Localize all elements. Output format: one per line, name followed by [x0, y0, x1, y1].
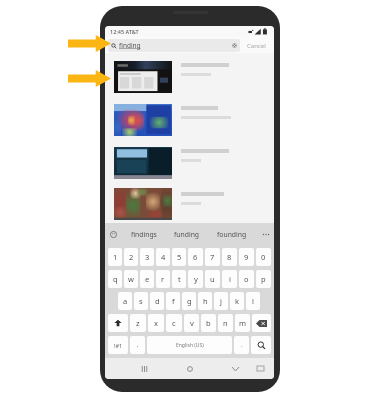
staticText: t — [178, 274, 181, 284]
button[interactable]: 9 — [239, 248, 254, 266]
button[interactable] — [105, 55, 274, 98]
other: Clear text — [232, 43, 237, 48]
staticText: Cancel — [247, 42, 266, 50]
staticText: funding — [174, 230, 200, 239]
button[interactable]: 0 — [256, 248, 271, 266]
other: Shift — [114, 319, 122, 327]
button[interactable]: Emoji — [109, 230, 118, 239]
button[interactable]: Backspace — [252, 314, 271, 332]
staticText: s — [139, 296, 143, 306]
button[interactable]: More — [261, 230, 270, 239]
button[interactable]: e — [140, 270, 154, 288]
staticText: founding — [217, 230, 247, 239]
staticText: e — [145, 274, 150, 284]
button[interactable]: Cancel — [240, 39, 273, 52]
button[interactable]: b — [201, 314, 216, 332]
button[interactable]: i — [222, 270, 237, 288]
staticText: !#1 — [114, 342, 123, 349]
staticText: a — [123, 296, 128, 306]
staticText: 9 — [244, 252, 249, 262]
button[interactable]: founding — [217, 230, 247, 239]
staticText: 5 — [177, 252, 182, 262]
button[interactable]: z — [130, 314, 146, 332]
button[interactable]: j — [214, 292, 228, 310]
button[interactable] — [105, 98, 274, 141]
staticText: w — [128, 274, 134, 284]
button[interactable]: 5 — [172, 248, 186, 266]
button[interactable]: x — [148, 314, 164, 332]
staticText: English (US) — [176, 342, 204, 349]
staticText: findings — [131, 230, 157, 239]
button[interactable]: q — [108, 270, 122, 288]
button[interactable]: p — [256, 270, 271, 288]
button[interactable]: 1 — [108, 248, 122, 266]
staticText: j — [220, 296, 222, 306]
button[interactable]: d — [150, 292, 164, 310]
staticText: f — [172, 296, 175, 306]
staticText: 1 — [113, 252, 118, 262]
staticText: b — [206, 318, 211, 328]
button[interactable]: h — [198, 292, 212, 310]
staticText: 8 — [227, 252, 232, 262]
button[interactable]: Recents — [135, 362, 153, 375]
button[interactable]: . — [234, 336, 249, 354]
button[interactable]: 6 — [188, 248, 203, 266]
button[interactable]: Search — [251, 336, 271, 354]
button[interactable]: finding — [108, 39, 240, 52]
button[interactable]: c — [166, 314, 182, 332]
button[interactable] — [105, 184, 274, 223]
button[interactable]: 4 — [156, 248, 170, 266]
staticText: l — [252, 296, 254, 306]
button[interactable]: v — [184, 314, 199, 332]
button[interactable]: a — [118, 292, 132, 310]
staticText: finding — [119, 41, 141, 50]
button[interactable]: Back — [226, 362, 244, 375]
button[interactable]: funding — [174, 230, 200, 239]
button[interactable]: 3 — [140, 248, 154, 266]
staticText: u — [210, 274, 215, 284]
staticText: p — [261, 274, 266, 284]
staticText: q — [113, 274, 118, 284]
staticText: 7 — [210, 252, 215, 262]
button[interactable]: m — [235, 314, 250, 332]
staticText: m — [239, 318, 247, 328]
button[interactable]: findings — [131, 230, 157, 239]
button[interactable]: s — [134, 292, 148, 310]
button[interactable]: 2 — [124, 248, 138, 266]
staticText: 4 — [161, 252, 166, 262]
button[interactable]: English (US) — [147, 336, 232, 354]
button[interactable] — [105, 141, 274, 184]
button[interactable]: !#1 — [108, 336, 128, 354]
button[interactable]: Shift — [108, 314, 128, 332]
button[interactable]: l — [246, 292, 260, 310]
staticText: 3 — [145, 252, 150, 262]
staticText: n — [223, 318, 228, 328]
button[interactable]: f — [166, 292, 180, 310]
button[interactable]: 7 — [205, 248, 220, 266]
button[interactable]: o — [239, 270, 254, 288]
button[interactable]: Hide keyboard — [252, 362, 268, 375]
staticText: 6 — [193, 252, 198, 262]
button[interactable]: t — [172, 270, 186, 288]
staticText: o — [244, 274, 249, 284]
button[interactable]: k — [230, 292, 244, 310]
staticText: k — [235, 296, 240, 306]
button[interactable]: n — [218, 314, 233, 332]
button[interactable]: , — [130, 336, 145, 354]
staticText: d — [155, 296, 160, 306]
staticText: , — [137, 341, 139, 349]
button[interactable]: 8 — [222, 248, 237, 266]
button[interactable]: Home — [181, 362, 199, 375]
staticText: 12:45 AT&T — [110, 28, 139, 35]
staticText: x — [154, 318, 158, 328]
staticText: y — [194, 274, 198, 284]
staticText: g — [187, 296, 192, 306]
button[interactable]: g — [182, 292, 196, 310]
button[interactable]: r — [156, 270, 170, 288]
button[interactable]: u — [205, 270, 220, 288]
button[interactable]: w — [124, 270, 138, 288]
staticText: c — [172, 318, 176, 328]
button[interactable]: y — [188, 270, 203, 288]
staticText: r — [161, 274, 165, 284]
staticText: 2 — [129, 252, 134, 262]
